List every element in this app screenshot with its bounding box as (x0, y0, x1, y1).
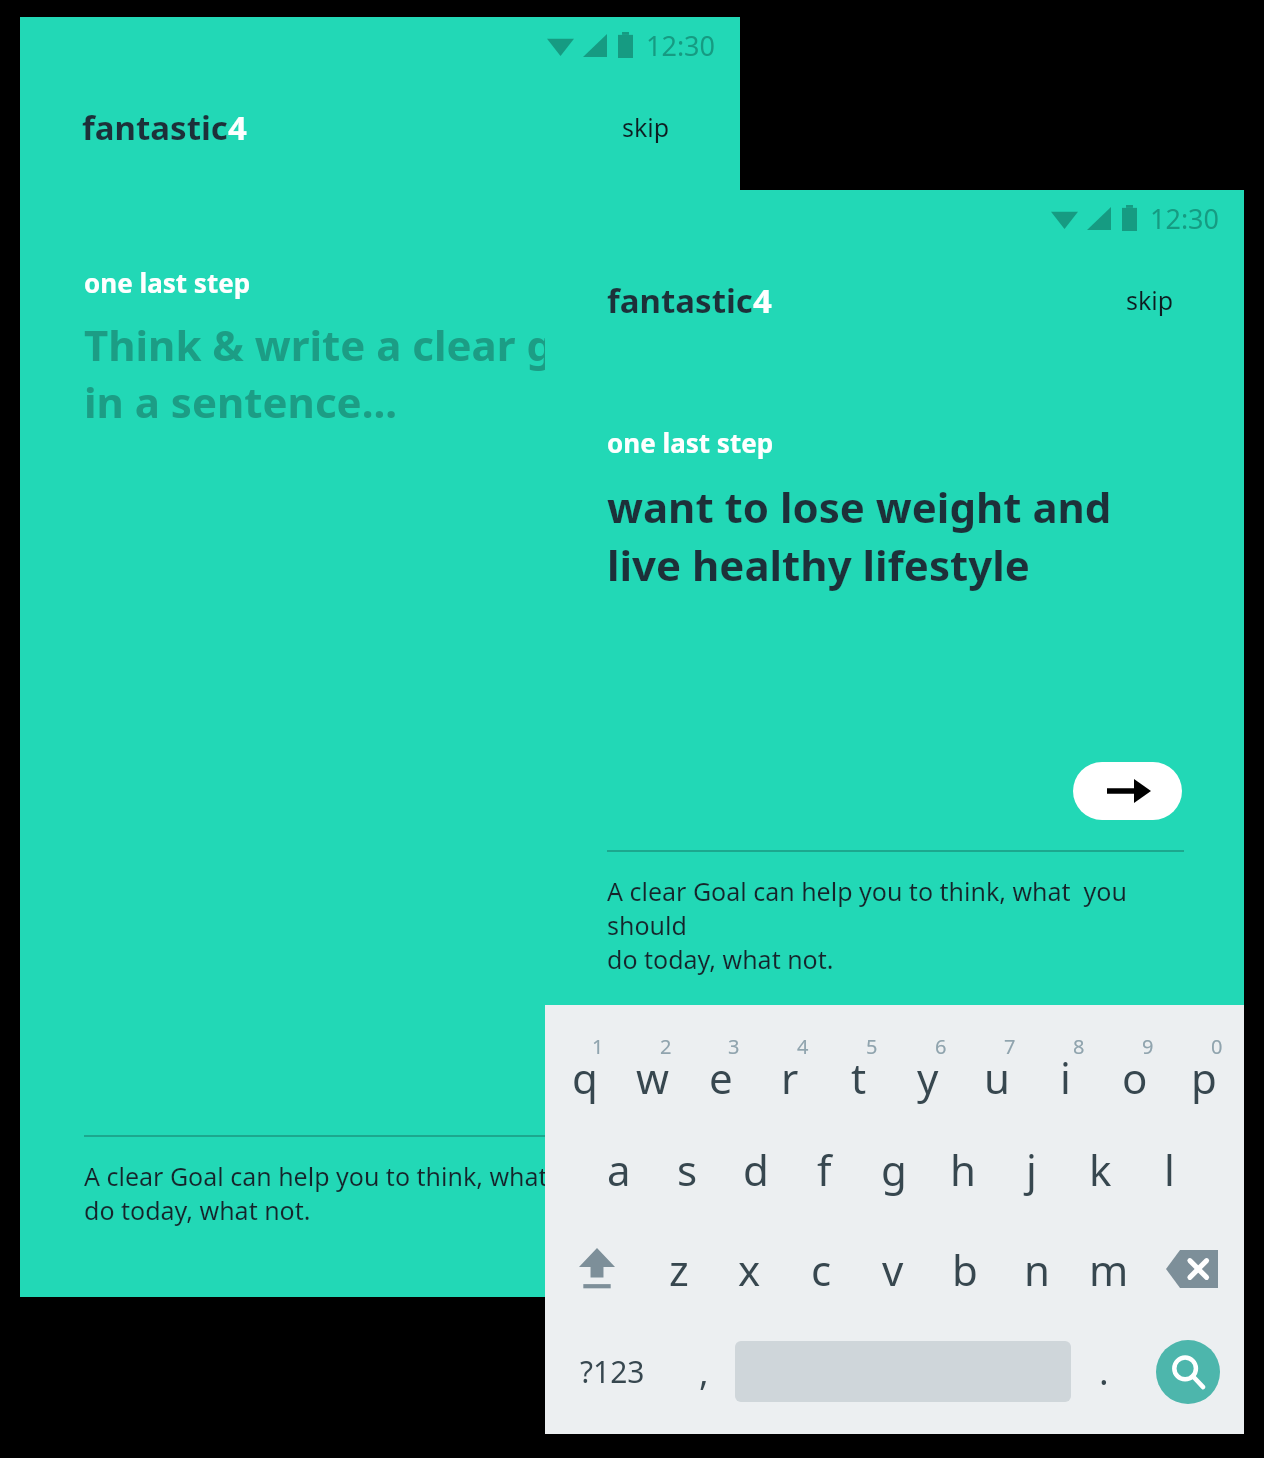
button[interactable]: j (997, 1119, 1066, 1219)
button[interactable]: 7 (962, 1019, 1031, 1119)
staticText: 1 (592, 1033, 604, 1060)
staticText: c (811, 1241, 832, 1298)
staticText: 8 (1073, 1033, 1085, 1060)
button[interactable]: Shift (551, 1219, 643, 1319)
button[interactable]: 4 (755, 1019, 824, 1119)
staticText: 6 (935, 1033, 947, 1060)
button[interactable]: 9 (1100, 1019, 1169, 1119)
button[interactable]: , (673, 1319, 735, 1424)
staticText: s (677, 1141, 698, 1198)
staticText: 12:30 (1150, 200, 1220, 237)
button[interactable]: g (859, 1119, 928, 1219)
staticText: skip (622, 110, 670, 144)
button[interactable]: skip (1118, 275, 1182, 325)
button[interactable]: s (653, 1119, 721, 1219)
staticText: A clear Goal can help you to think, what… (84, 1159, 691, 1227)
staticText: a (607, 1141, 631, 1198)
staticText: A clear Goal can help you to think, what… (607, 874, 1184, 976)
staticText: k (1089, 1141, 1112, 1198)
button[interactable]: ?123 (551, 1319, 673, 1424)
staticText: o (1122, 1049, 1148, 1106)
staticText: i (1060, 1049, 1071, 1106)
button[interactable]: b (929, 1219, 1001, 1319)
button[interactable]: f (790, 1119, 859, 1219)
button[interactable]: Backspace (1145, 1219, 1238, 1319)
staticText: 3 (728, 1033, 740, 1060)
button[interactable]: n (1001, 1219, 1073, 1319)
staticText: 5 (866, 1033, 878, 1060)
staticText: ?123 (580, 1351, 645, 1392)
button[interactable]: 0 (1169, 1019, 1238, 1119)
button[interactable]: a (585, 1119, 653, 1219)
staticText: j (1026, 1141, 1037, 1198)
staticText: m (1089, 1241, 1129, 1298)
staticText: 7 (1004, 1033, 1016, 1060)
button[interactable]: 1 (551, 1019, 619, 1119)
staticText: 4 (753, 278, 772, 323)
staticText: 9 (1142, 1033, 1154, 1060)
staticText: l (1164, 1141, 1175, 1198)
staticText: 0 (1211, 1033, 1223, 1060)
staticText: e (709, 1049, 733, 1106)
button[interactable]: z (643, 1219, 714, 1319)
staticText: 4 (228, 105, 247, 150)
button[interactable]: skip (614, 102, 678, 152)
button[interactable]: c (785, 1219, 857, 1319)
staticText: q (572, 1049, 598, 1106)
staticText: fantastic (607, 278, 753, 323)
button[interactable]: . (1071, 1319, 1137, 1424)
staticText: 4 (797, 1033, 809, 1060)
staticText: want to lose weight and live healthy lif… (607, 478, 1112, 593)
button[interactable]: d (721, 1119, 790, 1219)
staticText: one last step (607, 425, 774, 460)
staticText: , (699, 1347, 709, 1396)
staticText: r (781, 1049, 799, 1106)
button[interactable]: m (1073, 1219, 1145, 1319)
staticText: z (669, 1241, 689, 1298)
button[interactable]: x (714, 1219, 785, 1319)
button[interactable]: 3 (687, 1019, 755, 1119)
button[interactable]: 5 (824, 1019, 893, 1119)
staticText: g (881, 1141, 907, 1198)
staticText: t (851, 1049, 867, 1106)
staticText: 12:30 (646, 27, 716, 64)
staticText: w (636, 1049, 670, 1106)
staticText: h (950, 1141, 976, 1198)
staticText: Think & write a clear goal in a sentence… (84, 316, 617, 430)
button[interactable]: k (1066, 1119, 1135, 1219)
staticText: y (917, 1049, 939, 1106)
button[interactable]: 8 (1031, 1019, 1100, 1119)
staticText: . (1099, 1347, 1109, 1396)
button[interactable]: 2 (619, 1019, 687, 1119)
staticText: 2 (660, 1033, 672, 1060)
staticText: f (817, 1141, 832, 1198)
staticText: b (952, 1241, 978, 1298)
staticText: u (984, 1049, 1010, 1106)
button[interactable]: Next (1073, 762, 1182, 820)
staticText: v (882, 1241, 904, 1298)
button[interactable]: v (857, 1219, 929, 1319)
staticText: skip (1126, 283, 1174, 317)
staticText: one last step (84, 265, 251, 300)
button[interactable]: h (928, 1119, 997, 1219)
button[interactable]: 6 (893, 1019, 962, 1119)
staticText: p (1191, 1049, 1217, 1106)
staticText: x (738, 1241, 761, 1298)
button[interactable]: Search (1156, 1340, 1220, 1404)
staticText: fantastic (82, 105, 228, 150)
button[interactable]: l (1135, 1119, 1204, 1219)
staticText: d (743, 1141, 769, 1198)
staticText: n (1024, 1241, 1050, 1298)
